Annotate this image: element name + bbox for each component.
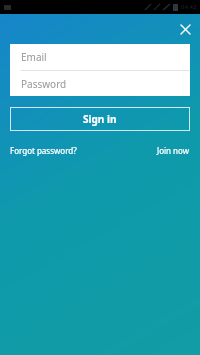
staticText: Sign in [83, 112, 117, 126]
staticText: 04:42 [181, 3, 197, 11]
button[interactable]: Sign in [10, 107, 190, 131]
staticText: Password [21, 77, 67, 91]
staticText: Forgot password? [10, 145, 77, 156]
button[interactable]: Join now [157, 143, 190, 157]
button[interactable]: Forgot password? [10, 143, 77, 157]
staticText: Email [21, 50, 47, 64]
button[interactable]: Password [10, 71, 190, 96]
staticText: Join now [157, 145, 190, 156]
button[interactable]: Close [174, 18, 196, 40]
button[interactable]: Email [10, 44, 190, 70]
